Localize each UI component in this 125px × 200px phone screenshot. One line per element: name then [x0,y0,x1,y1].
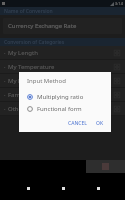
button[interactable]: · [0,102,125,115]
button[interactable]: Recents [92,182,104,194]
button[interactable]: Back [22,182,34,194]
staticText: · [4,91,6,99]
staticText: · [4,63,6,71]
button[interactable]: CANCEL [66,118,89,129]
staticText: Name of Conversion [4,8,53,15]
staticText: Other [8,105,113,113]
staticText: My Length [8,49,113,57]
button[interactable]: · [0,74,125,87]
staticText: Multiplying ratio [37,93,84,101]
staticText: My Functional form [8,77,113,85]
button[interactable]: · [0,46,125,59]
button[interactable]: Home [57,182,69,194]
button[interactable]: Functional form [19,103,111,115]
staticText: OK [96,120,104,127]
staticText: CANCEL [68,120,87,127]
staticText: Functional form [37,105,82,113]
staticText: My Temperature [8,63,113,71]
staticText: Input Method [27,77,66,85]
staticText: · [4,77,6,85]
button[interactable]: Multiplying ratio [19,91,111,103]
button[interactable]: OK [94,118,106,129]
button[interactable]: · [0,88,125,101]
button[interactable]: · [0,60,125,73]
staticText: Currency Exchange Rate [8,22,77,30]
staticText: Conversion of Categories [4,39,65,46]
staticText: · [4,49,6,57]
button[interactable]: Currency Exchange Rate [3,18,122,34]
staticText: 3:14 [115,1,123,6]
staticText: Family [8,91,113,99]
staticText: · [4,105,6,113]
